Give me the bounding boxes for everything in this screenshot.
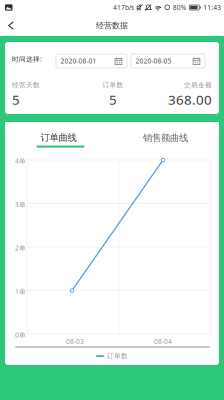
staticText: 417b/s	[113, 3, 134, 12]
staticText: 11:43	[203, 3, 221, 12]
staticText: 4单	[15, 156, 26, 165]
staticText: 销售额曲线	[143, 132, 188, 144]
staticText: 订单曲线	[40, 132, 76, 143]
staticText: 1单	[15, 287, 26, 296]
staticText: 2020-08-05	[135, 57, 171, 65]
staticText: 08-04	[154, 337, 172, 346]
staticText: 经营天数	[12, 81, 40, 89]
staticText: 经营数据	[96, 21, 128, 30]
staticText: 2020-08-01	[60, 57, 96, 65]
staticText: 2单	[15, 243, 26, 252]
staticText: 3单	[15, 200, 26, 209]
staticText: 0单	[15, 330, 26, 339]
staticText: 80%	[173, 3, 187, 12]
staticText: 368.00	[168, 91, 212, 108]
staticText: 5	[12, 91, 20, 108]
staticText: 5	[109, 91, 117, 108]
button[interactable]: 订单曲线	[5, 122, 112, 152]
staticText: 订单数	[102, 81, 123, 89]
button[interactable]: 2020-08-05	[131, 54, 205, 68]
staticText: 交易金额	[184, 81, 212, 89]
staticText: 时间选择:	[12, 54, 42, 63]
staticText: 订单数	[107, 352, 128, 360]
button[interactable]: 2020-08-01	[56, 54, 127, 68]
button[interactable]: 销售额曲线	[112, 122, 219, 152]
button[interactable]: Back	[0, 15, 22, 36]
staticText: 08-03	[66, 337, 84, 346]
